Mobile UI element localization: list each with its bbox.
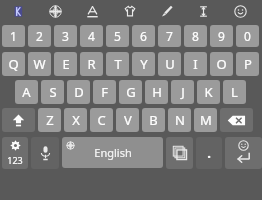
button[interactable]: 1 bbox=[2, 25, 25, 47]
button[interactable]: English bbox=[62, 137, 163, 168]
staticText: Y bbox=[140, 55, 148, 73]
staticText: A bbox=[22, 83, 31, 101]
button[interactable]: H bbox=[145, 80, 168, 104]
button[interactable]: 0 bbox=[236, 25, 259, 47]
button[interactable]: I bbox=[184, 52, 207, 76]
button[interactable]: N bbox=[168, 108, 191, 132]
button[interactable]: X bbox=[64, 108, 87, 132]
staticText: 8 bbox=[192, 28, 199, 44]
staticText: K bbox=[204, 83, 213, 101]
staticText: F bbox=[101, 83, 108, 101]
button[interactable]: 4 bbox=[80, 25, 103, 47]
staticText: V bbox=[124, 111, 132, 129]
staticText: E bbox=[62, 55, 70, 73]
staticText: D bbox=[74, 83, 84, 101]
button[interactable]: Language bbox=[37, 0, 74, 22]
button[interactable]: D bbox=[67, 80, 90, 104]
button[interactable]: P bbox=[236, 52, 259, 76]
button[interactable]: 2 bbox=[28, 25, 51, 47]
staticText: Q bbox=[8, 55, 19, 73]
staticText: S bbox=[49, 83, 57, 101]
staticText: U bbox=[165, 55, 175, 73]
button[interactable]: Brush bbox=[148, 0, 185, 22]
button[interactable]: 5 bbox=[106, 25, 129, 47]
button[interactable]: Theme bbox=[111, 0, 148, 22]
button[interactable]: V bbox=[116, 108, 139, 132]
button[interactable]: Z bbox=[38, 108, 61, 132]
button[interactable]: Settings and numbers bbox=[2, 137, 28, 169]
staticText: 1 bbox=[10, 28, 17, 44]
button[interactable]: G bbox=[119, 80, 142, 104]
button[interactable]: Voice input bbox=[31, 137, 59, 169]
button[interactable]: C bbox=[90, 108, 113, 132]
button[interactable]: Backspace bbox=[220, 108, 253, 132]
staticText: N bbox=[175, 111, 185, 129]
staticText: English bbox=[94, 145, 132, 160]
button[interactable]: J bbox=[171, 80, 194, 104]
button[interactable]: 3 bbox=[54, 25, 77, 47]
staticText: R bbox=[87, 55, 96, 73]
button[interactable]: B bbox=[142, 108, 165, 132]
button[interactable]: Key height bbox=[185, 0, 222, 22]
button[interactable]: S bbox=[41, 80, 64, 104]
staticText: J bbox=[181, 83, 185, 101]
button[interactable]: Enter bbox=[225, 137, 262, 169]
staticText: P bbox=[244, 55, 252, 73]
staticText: H bbox=[152, 83, 162, 101]
staticText: 6 bbox=[140, 28, 147, 44]
staticText: 5 bbox=[114, 28, 121, 44]
staticText: 4 bbox=[88, 28, 95, 44]
staticText: 3 bbox=[62, 28, 69, 44]
button[interactable]: K bbox=[197, 80, 220, 104]
staticText: O bbox=[216, 55, 227, 73]
staticText: L bbox=[231, 83, 238, 101]
button[interactable]: T bbox=[106, 52, 129, 76]
staticText: 0 bbox=[244, 28, 251, 44]
button[interactable]: 8 bbox=[184, 25, 207, 47]
staticText: T bbox=[114, 55, 122, 73]
staticText: 7 bbox=[166, 28, 173, 44]
button[interactable]: M bbox=[194, 108, 217, 132]
staticText: C bbox=[97, 111, 106, 129]
staticText: 2 bbox=[36, 28, 43, 44]
button[interactable]: U bbox=[158, 52, 181, 76]
staticText: Z bbox=[46, 111, 54, 129]
button[interactable]: Emoji bbox=[222, 0, 259, 22]
button[interactable]: Y bbox=[132, 52, 155, 76]
button[interactable]: Text style bbox=[74, 0, 111, 22]
button[interactable]: O bbox=[210, 52, 233, 76]
staticText: I bbox=[193, 55, 198, 73]
button[interactable]: Clipboard bbox=[166, 137, 193, 169]
button[interactable]: . bbox=[196, 137, 222, 169]
button[interactable]: Q bbox=[2, 52, 25, 76]
button[interactable]: E bbox=[54, 52, 77, 76]
staticText: 123 bbox=[7, 154, 23, 166]
button[interactable]: 7 bbox=[158, 25, 181, 47]
button[interactable]: 9 bbox=[210, 25, 233, 47]
staticText: B bbox=[149, 111, 158, 129]
staticText: X bbox=[72, 111, 80, 129]
staticText: W bbox=[33, 55, 46, 73]
button[interactable]: Shift bbox=[2, 108, 35, 132]
staticText: G bbox=[126, 83, 136, 101]
button[interactable]: Switch keyboard bbox=[0, 0, 37, 22]
button[interactable]: W bbox=[28, 52, 51, 76]
button[interactable]: A bbox=[15, 80, 38, 104]
button[interactable]: 6 bbox=[132, 25, 155, 47]
staticText: . bbox=[207, 144, 211, 162]
staticText: M bbox=[200, 111, 212, 129]
button[interactable]: R bbox=[80, 52, 103, 76]
staticText: 9 bbox=[218, 28, 225, 44]
button[interactable]: F bbox=[93, 80, 116, 104]
button[interactable]: L bbox=[223, 80, 246, 104]
